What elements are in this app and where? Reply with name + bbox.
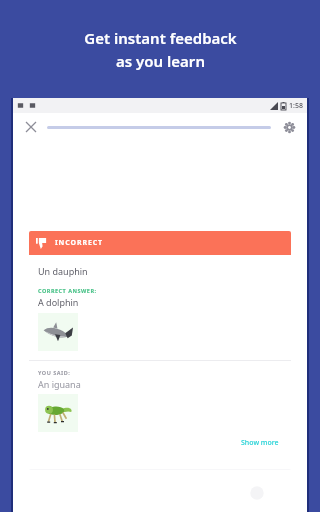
button[interactable]: Close: [21, 117, 41, 137]
staticText: CORRECT ANSWER:: [38, 287, 97, 294]
button[interactable]: Settings: [279, 117, 299, 137]
staticText: A dolphin: [38, 296, 79, 308]
staticText: Get instant feedback: [84, 28, 237, 48]
staticText: INCORRECT: [55, 238, 104, 248]
button[interactable]: INCORRECT: [29, 231, 291, 455]
button[interactable]: Show more: [238, 435, 282, 451]
staticText: Show more: [241, 438, 279, 448]
staticText: 1:58: [289, 101, 303, 111]
staticText: An iguana: [38, 378, 81, 390]
staticText: Un dauphin: [38, 265, 88, 277]
staticText: as you learn: [116, 51, 205, 71]
staticText: YOU SAID:: [38, 369, 71, 376]
